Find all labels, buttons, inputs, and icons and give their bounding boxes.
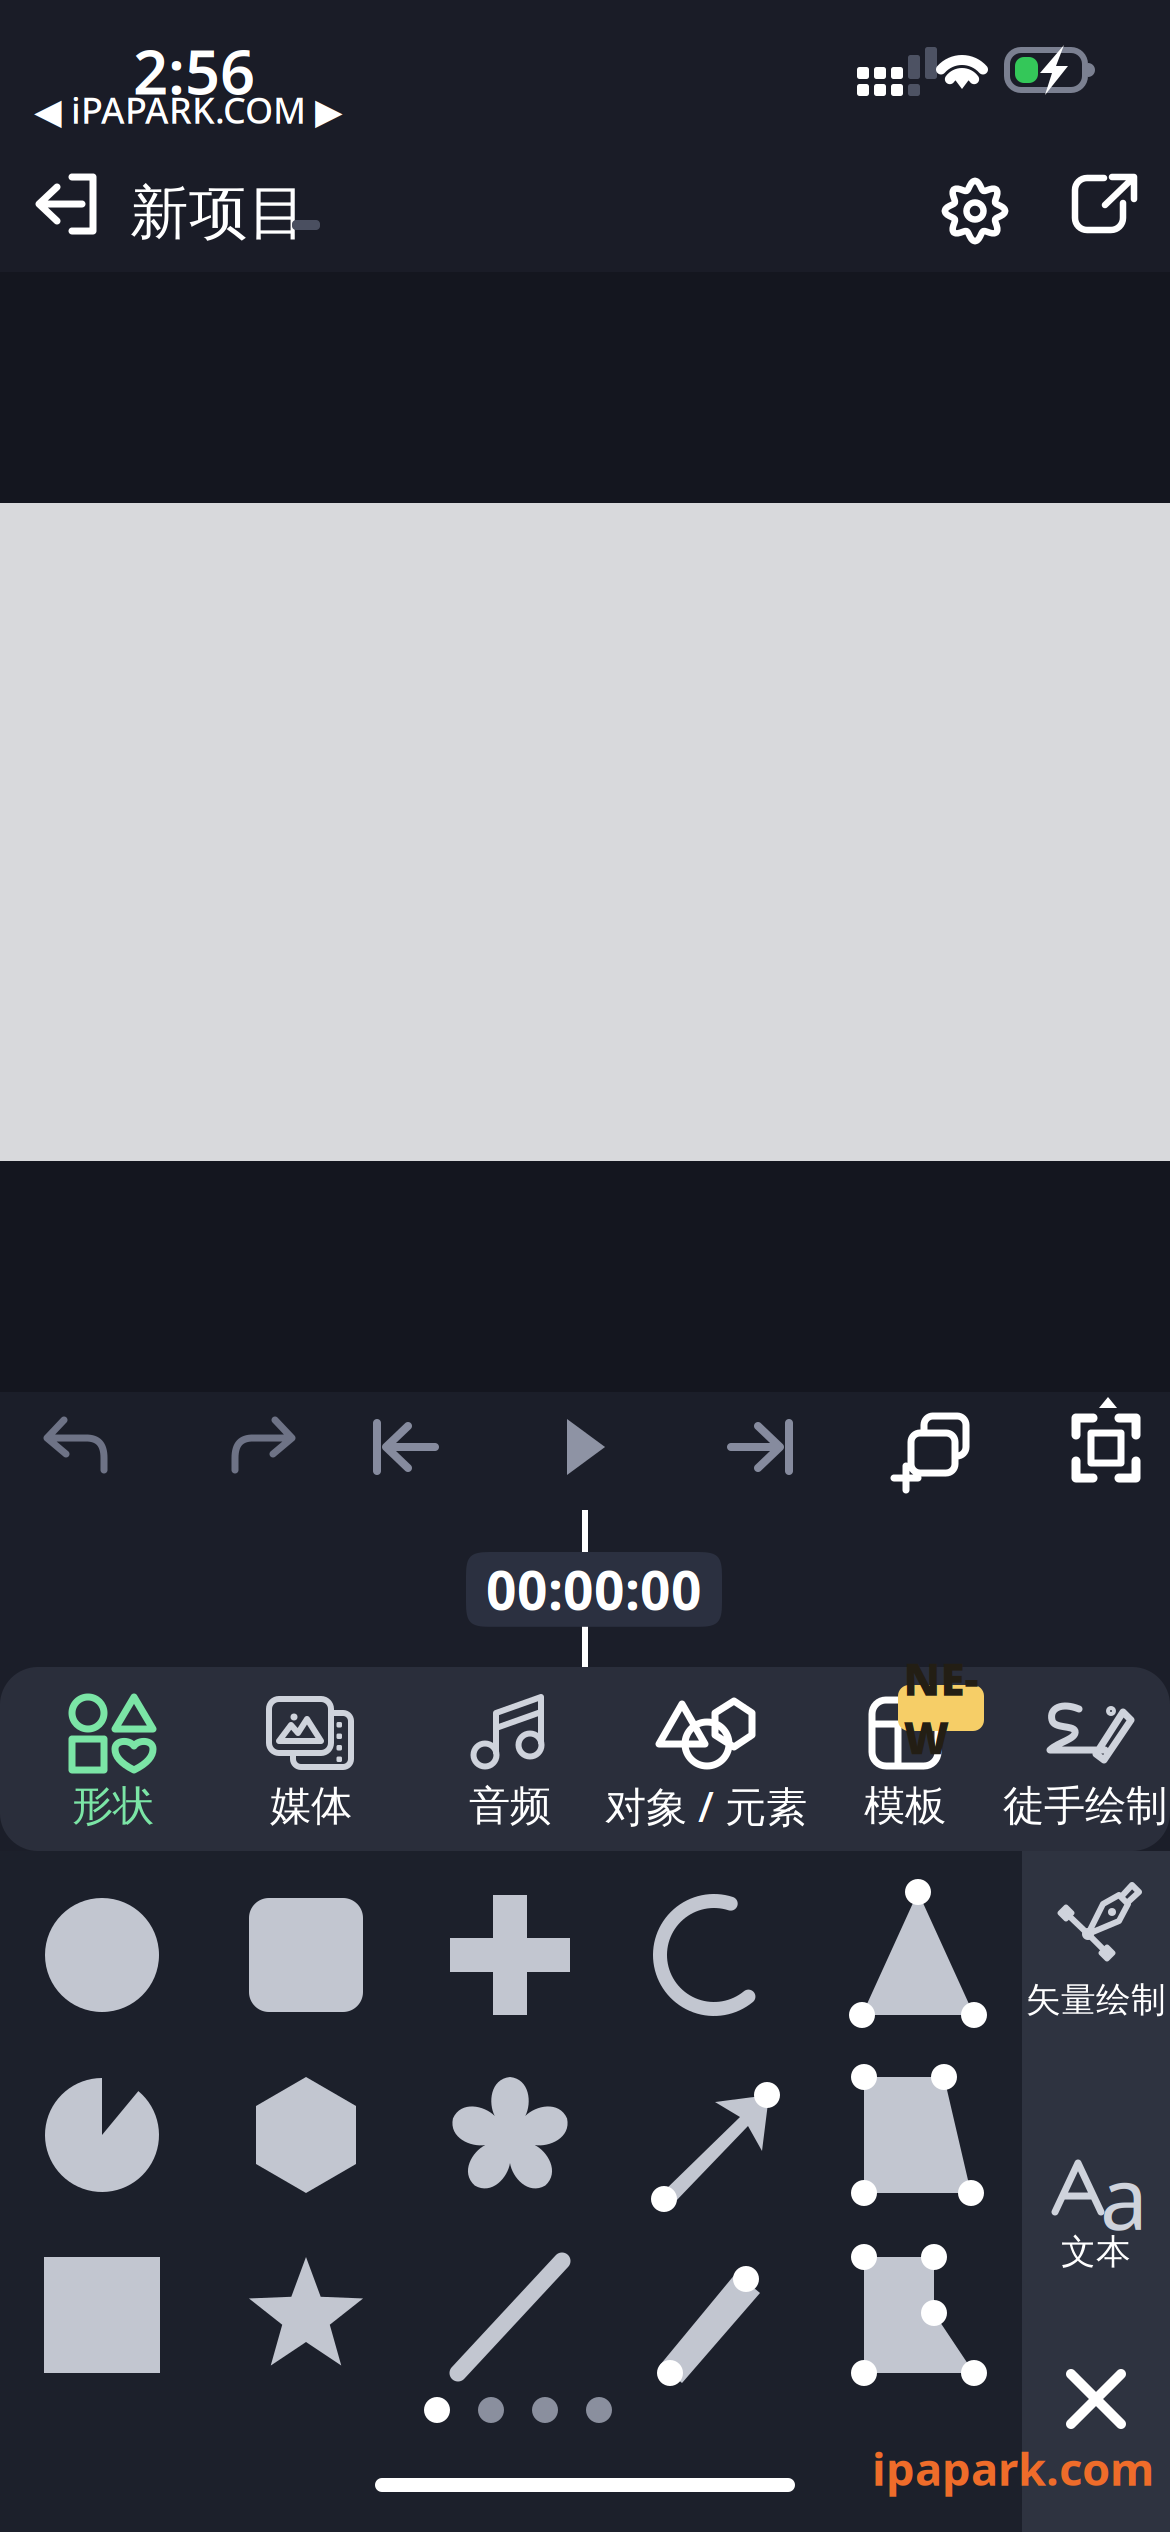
button[interactable] [204,2225,408,2405]
staticText: ◀ iPAPARK.COM ▶ [34,86,343,134]
button[interactable] [816,1865,1020,2045]
button[interactable] [408,2225,612,2405]
button[interactable] [612,1865,816,2045]
button[interactable]: 对象 / 元素 [611,1667,801,1851]
button[interactable] [408,2045,612,2225]
button[interactable]: Redo [195,1396,315,1496]
button[interactable]: Play [528,1396,640,1496]
button[interactable] [0,1865,204,2045]
button[interactable] [204,2045,408,2225]
staticText: ipapark.com [872,2438,1154,2498]
button[interactable] [204,1865,408,2045]
button[interactable]: 矢量绘制 [1022,1876,1170,2052]
button[interactable]: Skip to start [348,1396,464,1496]
button[interactable] [408,1865,612,2045]
button[interactable]: 新项目 [124,162,374,258]
button[interactable] [612,2225,816,2405]
staticText: 2:56 [133,30,255,111]
button[interactable]: Skip to end [702,1396,818,1496]
staticText: 形状 [72,1781,154,1831]
button[interactable] [612,2045,816,2225]
button[interactable] [0,2225,204,2405]
button[interactable]: Undo [20,1396,140,1496]
button[interactable]: 徒手绘制 [1001,1667,1169,1851]
button[interactable]: Back [8,162,124,258]
button[interactable]: a [1022,2134,1170,2304]
staticText: 媒体 [270,1781,352,1831]
button[interactable] [0,2045,204,2225]
button[interactable] [816,2225,1020,2405]
staticText: 文本 [1061,2231,1131,2273]
button[interactable]: 媒体 [216,1667,406,1851]
button[interactable] [816,2045,1020,2225]
staticText: 新项目 [130,177,307,249]
staticText: NEW [903,1650,978,1766]
button[interactable]: Close [1022,2340,1170,2460]
staticText: 对象 / 元素 [605,1779,807,1833]
staticText: 00:00:00 [486,1554,702,1625]
staticText: 音频 [469,1781,551,1831]
button[interactable]: 音频 [415,1667,605,1851]
staticText: 徒手绘制 [1003,1781,1167,1831]
button[interactable]: 模板 [810,1667,1000,1851]
button[interactable]: 形状 [18,1667,208,1851]
staticText: 矢量绘制 [1026,1979,1166,2021]
button[interactable]: Fit to frame [1048,1396,1160,1496]
staticText: a [1100,2140,1148,2253]
button[interactable]: Settings [910,164,1034,258]
staticText: 模板 [864,1781,946,1831]
button[interactable]: Add layer [874,1396,994,1496]
button[interactable]: Export [1040,164,1158,258]
